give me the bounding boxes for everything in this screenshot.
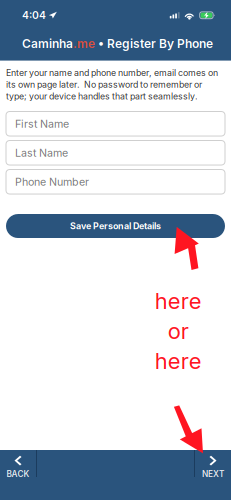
staticText: First Name <box>15 117 69 130</box>
staticText: 4:04 <box>22 9 46 22</box>
staticText: Last Name <box>15 146 68 159</box>
button[interactable]: First Name <box>6 111 225 136</box>
button[interactable]: BACK <box>0 450 36 500</box>
staticText: here <box>155 348 202 374</box>
staticText: Enter your name and phone number, email … <box>6 68 218 101</box>
staticText: Caminha <box>22 36 73 51</box>
button[interactable]: Last Name <box>6 140 225 165</box>
staticText: or <box>168 318 189 344</box>
staticText: .me <box>73 36 95 51</box>
staticText: Phone Number <box>15 175 89 188</box>
staticText: here <box>155 288 202 314</box>
button[interactable]: Save Personal Details <box>6 214 225 238</box>
staticText: NEXT <box>202 469 224 479</box>
staticText: Save Personal Details <box>70 221 161 231</box>
staticText: • Register By Phone <box>95 36 213 51</box>
button[interactable]: NEXT <box>195 450 231 500</box>
button[interactable]: Phone Number <box>6 169 225 194</box>
staticText: BACK <box>6 469 29 479</box>
